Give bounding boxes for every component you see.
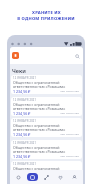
staticText: Чеки [12, 67, 26, 74]
staticText: Общество с ограниченной [13, 80, 60, 85]
button[interactable]: 12 ЯНВАРЯ 2021 [11, 161, 82, 180]
staticText: 12 ЯНВАРЯ 2021 [13, 162, 37, 166]
staticText: ответственностью «Ромашка» [13, 149, 66, 154]
staticText: 12 ЯНВАРЯ 2021 [13, 76, 37, 80]
staticText: ответственностью «Ромашка» [13, 106, 66, 111]
staticText: В ОДНОМ ПРИЛОЖЕНИИ [17, 16, 75, 22]
staticText: ответственностью «Ромашка» [13, 170, 66, 175]
staticText: 12 ЯНВАРЯ 2021 [13, 98, 37, 102]
staticText: 1 234,56 ₽ [13, 132, 31, 137]
button[interactable]: 12 ЯНВАРЯ 2021 [11, 75, 82, 94]
staticText: 1 234,56 ₽ [13, 89, 31, 94]
staticText: ХРАНИТЕ ИХ [32, 10, 61, 16]
button[interactable]: Tab 2 [27, 173, 38, 181]
staticText: ЧЕК ПОЛУЧЕН [60, 89, 80, 92]
staticText: ЧЕК ПОЛУЧЕН [60, 175, 80, 178]
staticText: ответственностью «Ромашка» [13, 84, 66, 89]
button[interactable]: Search [73, 52, 81, 60]
staticText: ЧЕК ПОЛУЧЕН [60, 111, 80, 114]
staticText: ответственностью «Ромашка» [13, 127, 66, 132]
staticText: 12 ЯНВАРЯ 2021 [13, 141, 37, 145]
staticText: 1 234,56 ₽ [13, 154, 31, 159]
staticText: 1 234,56 ₽ [13, 111, 31, 116]
staticText: Общество с ограниченной [13, 102, 60, 107]
staticText: Общество с ограниченной [13, 123, 60, 128]
button[interactable]: Tab 3 [41, 173, 52, 181]
button[interactable]: 12 ЯНВАРЯ 2021 [11, 140, 82, 159]
button[interactable]: Tab 4 [55, 173, 66, 181]
staticText: ЧЕК ПОЛУЧЕН [60, 132, 80, 135]
staticText: 12 ЯНВАРЯ 2021 [13, 119, 37, 123]
staticText: ЧЕК ПОЛУЧЕН [60, 154, 80, 157]
staticText: Общество с ограниченной [13, 166, 60, 171]
staticText: Общество с ограниченной [13, 145, 60, 150]
staticText: 1 234,56 ₽ [13, 175, 31, 180]
button[interactable]: 12 ЯНВАРЯ 2021 [11, 97, 82, 116]
button[interactable]: 12 ЯНВАРЯ 2021 [11, 118, 82, 137]
button[interactable]: Tab 5 [69, 173, 80, 181]
button[interactable]: App logo [12, 52, 19, 59]
button[interactable]: Tab 1 [13, 173, 24, 181]
